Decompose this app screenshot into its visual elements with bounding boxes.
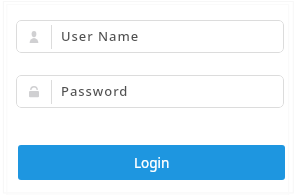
other: User name: [16, 31, 51, 43]
button[interactable]: Password: [16, 75, 284, 108]
button[interactable]: Login: [18, 145, 285, 180]
button[interactable]: User name: [16, 20, 284, 53]
staticText: Password: [61, 82, 129, 100]
staticText: Login: [134, 154, 170, 172]
staticText: User Name: [61, 27, 140, 45]
other: Password: [16, 86, 51, 98]
